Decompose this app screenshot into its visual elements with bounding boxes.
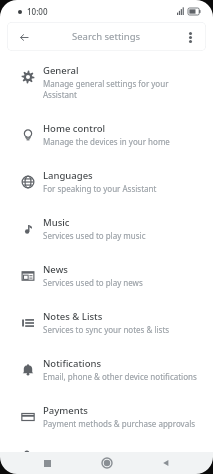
staticText: Notes & Lists [43,310,103,323]
staticText: Search settings [72,30,141,43]
staticText: Manage general settings for your Assista… [43,78,201,100]
staticText: Services used to play news [43,277,143,288]
button[interactable]: More options [179,26,201,48]
button[interactable]: Recents [34,452,60,474]
staticText: Notifications [43,357,102,370]
button[interactable]: Home [94,452,120,474]
staticText: For speaking to your Assistant [43,183,157,194]
staticText: Email, phone & other device notification… [43,371,197,382]
button[interactable]: News [0,257,213,298]
staticText: Music [43,216,70,229]
button[interactable]: Back [153,452,179,474]
button[interactable]: Back [13,26,35,48]
staticText: News [43,263,68,276]
button[interactable]: Languages [0,163,213,204]
button[interactable]: Music [0,210,213,251]
button[interactable]: Home control [0,116,213,157]
button[interactable]: Payments [0,398,213,439]
button[interactable]: Notes & Lists [0,304,213,345]
staticText: Services used to play music [43,230,146,241]
staticText: Services to sync your notes & lists [43,324,170,335]
button[interactable]: Notifications [0,351,213,392]
staticText: Home control [43,122,106,135]
button[interactable]: General [0,58,213,110]
staticText: Manage the devices in your home [43,136,170,147]
staticText: 10:00 [27,6,48,17]
staticText: General [43,64,79,77]
staticText: Languages [43,169,93,182]
staticText: Payment methods & purchase approvals [43,418,196,429]
staticText: Payments [43,404,88,417]
button[interactable]: Personalisation [0,445,213,452]
